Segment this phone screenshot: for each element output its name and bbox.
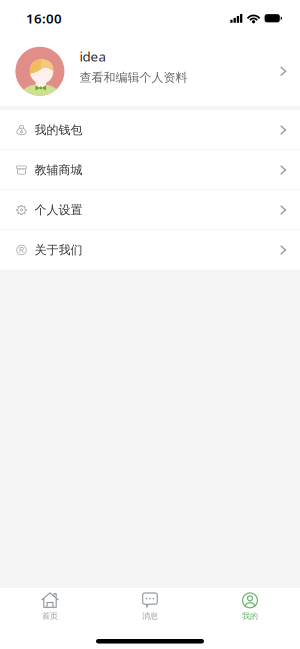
- staticText: idea: [79, 47, 105, 65]
- button[interactable]: 教辅商城: [0, 150, 300, 190]
- staticText: 个人设置: [34, 203, 82, 217]
- staticText: 16:00: [26, 9, 62, 27]
- staticText: 我的: [242, 611, 258, 621]
- staticText: 我的钱包: [34, 123, 82, 137]
- staticText: 关于我们: [34, 243, 82, 257]
- button[interactable]: 个人设置: [0, 190, 300, 230]
- staticText: 教辅商城: [34, 163, 82, 177]
- button[interactable]: 关于我们: [0, 230, 300, 270]
- button[interactable]: 我的钱包: [0, 110, 300, 150]
- button[interactable]: 首页: [0, 588, 100, 639]
- staticText: 首页: [42, 611, 58, 621]
- staticText: 查看和编辑个人资料: [79, 70, 187, 85]
- button[interactable]: 我的: [200, 588, 300, 639]
- staticText: 消息: [142, 611, 158, 621]
- button[interactable]: 消息: [100, 588, 200, 639]
- button[interactable]: idea: [0, 36, 300, 106]
